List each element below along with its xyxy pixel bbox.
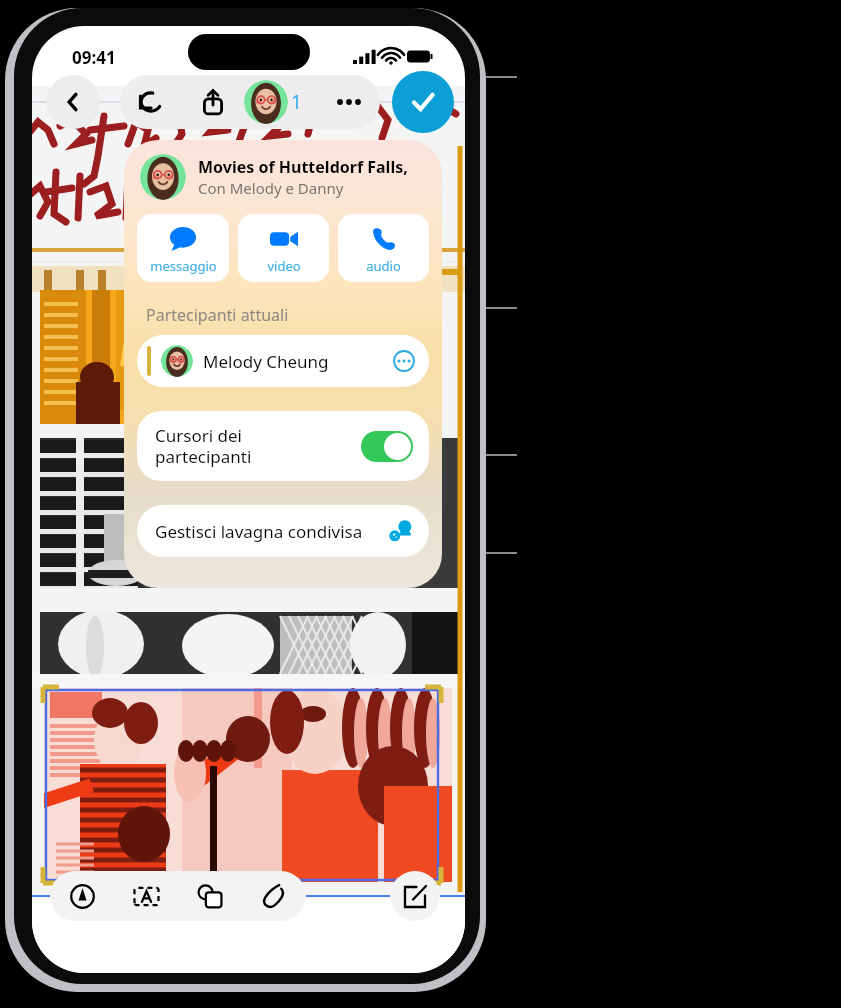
staticText: Con Melody e Danny <box>198 178 344 198</box>
staticText: 1 <box>291 89 302 115</box>
staticText: Movies of Hutteldorf Falls, NY <box>198 156 432 178</box>
button[interactable]: video <box>238 214 329 282</box>
button[interactable]: Condividi <box>182 75 244 129</box>
button[interactable]: 1 <box>244 75 320 129</box>
staticText: video <box>267 257 301 275</box>
button[interactable]: Fine <box>392 71 454 133</box>
button[interactable]: Melody Cheung <box>137 335 429 387</box>
staticText: Gestisci lavagna condivisa <box>155 520 363 543</box>
button[interactable]: Forme <box>178 871 242 921</box>
staticText: Cursori dei partecipanti <box>155 424 252 468</box>
button[interactable]: Movies of Hutteldorf Falls, NY <box>140 154 432 200</box>
button[interactable]: Cursori dei partecipanti <box>137 411 429 481</box>
button[interactable]: Nuova nota <box>390 871 440 921</box>
button[interactable]: audio <box>338 214 429 282</box>
button[interactable]: messaggio <box>137 214 229 282</box>
button[interactable]: Testo <box>114 871 178 921</box>
button[interactable]: Annulla <box>120 75 182 129</box>
button[interactable]: Altro <box>320 75 378 129</box>
button[interactable]: Allegato <box>242 871 306 921</box>
button[interactable]: Indietro <box>46 75 100 129</box>
button[interactable]: Penna <box>50 871 114 921</box>
button[interactable]: Gestisci lavagna condivisa <box>137 505 429 557</box>
staticText: audio <box>366 257 401 275</box>
button[interactable]: Opzioni partecipante <box>391 348 417 374</box>
staticText: Melody Cheung <box>203 350 329 373</box>
staticText: 09:41 <box>72 46 116 69</box>
staticText: Partecipanti attuali <box>146 304 289 326</box>
staticText: messaggio <box>150 257 217 275</box>
